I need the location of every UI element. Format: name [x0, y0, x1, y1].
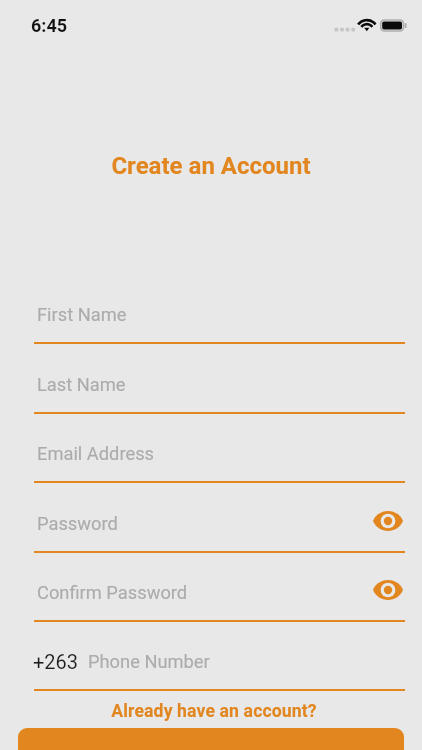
button[interactable]: Toggle password visibility: [367, 503, 409, 539]
staticText: Phone Number: [88, 651, 210, 672]
button[interactable]: Confirm Password: [34, 574, 405, 610]
button[interactable]: +263: [34, 643, 405, 679]
button[interactable]: Toggle password visibility: [367, 572, 409, 608]
button[interactable]: Password: [34, 505, 405, 541]
button[interactable]: Sign Up: [18, 728, 404, 750]
button[interactable]: Last Name: [34, 366, 405, 402]
button[interactable]: Already have an account?: [3, 701, 422, 722]
staticText: Create an Account: [0, 152, 422, 180]
button[interactable]: Email Address: [34, 435, 405, 471]
staticText: First Name: [37, 304, 127, 325]
staticText: Confirm Password: [37, 582, 188, 603]
button[interactable]: First Name: [34, 296, 405, 332]
staticText: Last Name: [37, 374, 126, 395]
staticText: Email Address: [37, 443, 155, 464]
staticText: Password: [37, 513, 118, 534]
staticText: 6:45: [31, 15, 68, 36]
staticText: +263: [33, 650, 79, 673]
